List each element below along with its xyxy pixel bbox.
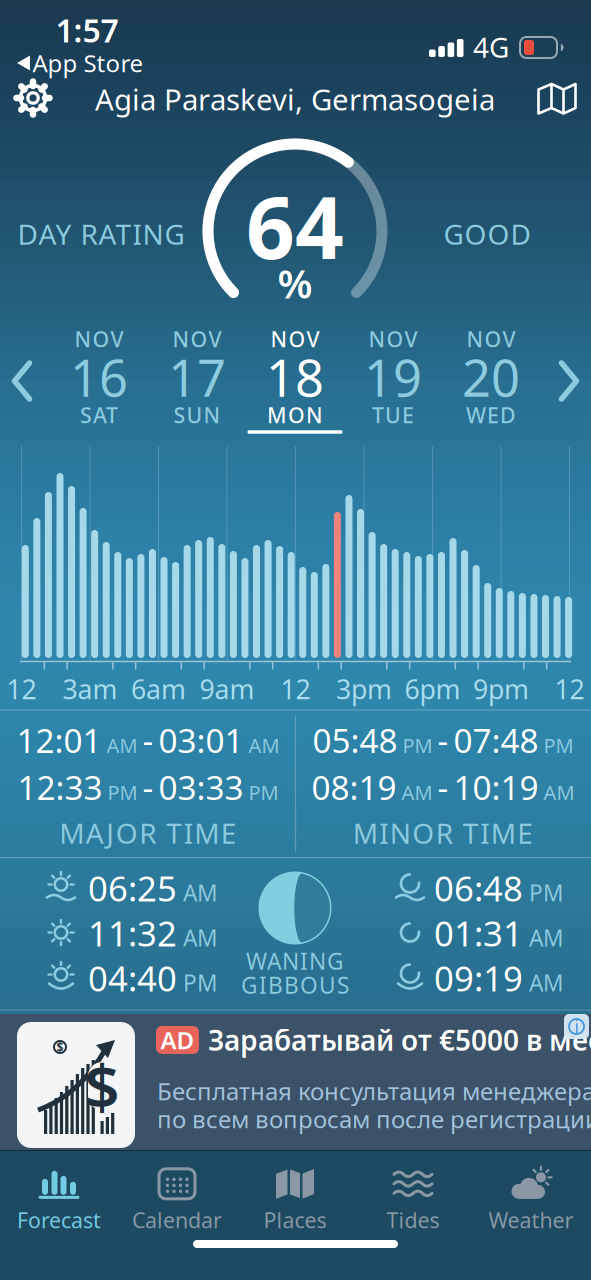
button[interactable]: Weather [472, 1166, 590, 1234]
staticText: 19 [364, 343, 422, 411]
staticText: $ [84, 1045, 119, 1127]
button[interactable]: Calendar [118, 1166, 236, 1234]
staticText: - [437, 718, 448, 762]
button[interactable]: Previous day [9, 359, 34, 403]
staticText: MAJOR TIME [59, 814, 237, 852]
staticText: PM [529, 878, 564, 908]
staticText: SUN [173, 401, 220, 429]
staticText: AM [106, 732, 137, 758]
staticText: 12:01 [16, 718, 101, 762]
staticText: Бесплатная консультация менеджера [157, 1075, 591, 1107]
staticText: AM [543, 779, 574, 805]
staticText: AM [183, 923, 218, 953]
staticText: 08:19 [311, 765, 396, 809]
staticText: 16 [70, 343, 128, 411]
staticText: NOV [74, 325, 123, 353]
staticText: по всем вопросам после регистрации. [157, 1103, 591, 1135]
staticText: i [574, 1015, 578, 1038]
button[interactable]: NOV [247, 320, 342, 432]
staticText: GOOD [443, 215, 530, 253]
button[interactable]: NOV [443, 320, 538, 432]
staticText: 1:57 [55, 9, 118, 51]
staticText: AM [529, 968, 564, 998]
staticText: Зарабатывай от €5000 в месяц [208, 1021, 591, 1059]
staticText: App Store [32, 47, 143, 79]
staticText: NOV [368, 325, 417, 353]
staticText: - [437, 765, 448, 809]
staticText: PM [183, 968, 218, 998]
staticText: Agia Paraskevi, Germasogeia [95, 79, 495, 118]
button[interactable]: Forecast [0, 1166, 118, 1234]
staticText: Places [263, 1206, 326, 1234]
staticText: AM [183, 878, 218, 908]
staticText: PM [107, 779, 137, 805]
staticText: TUE [372, 401, 414, 429]
staticText: 4G [473, 28, 509, 66]
staticText: MON [267, 401, 323, 429]
staticText: 9pm [473, 671, 529, 707]
button[interactable]: Next day [556, 359, 581, 403]
button[interactable]: Advertisement [0, 1014, 591, 1157]
staticText: PM [402, 732, 432, 758]
staticText: 04:40 [88, 955, 177, 1001]
button[interactable]: Settings [11, 76, 55, 120]
staticText: 20 [462, 343, 520, 411]
button[interactable]: Map [536, 81, 577, 116]
staticText: 01:31 [434, 910, 523, 956]
staticText: 12 [554, 671, 584, 707]
staticText: $ [56, 1039, 63, 1055]
staticText: PM [248, 779, 278, 805]
staticText: 64 [246, 169, 344, 283]
staticText: Calendar [132, 1206, 222, 1234]
staticText: Forecast [17, 1206, 101, 1234]
staticText: AM [248, 732, 279, 758]
staticText: 11:32 [88, 910, 177, 956]
staticText: 06:25 [88, 865, 177, 911]
staticText: 6am [131, 671, 186, 707]
staticText: 3am [62, 671, 117, 707]
staticText: 6pm [404, 671, 460, 707]
staticText: AD [160, 1024, 194, 1056]
staticText: 03:01 [158, 718, 243, 762]
staticText: - [142, 718, 153, 762]
staticText: 05:48 [312, 718, 397, 762]
button[interactable]: NOV [345, 320, 440, 432]
staticText: 12 [6, 671, 36, 707]
button[interactable]: Tides [354, 1166, 472, 1234]
staticText: GIBBOUS [241, 970, 349, 1000]
staticText: 07:48 [453, 718, 538, 762]
staticText: 06:48 [434, 865, 523, 911]
staticText: 9am [199, 671, 254, 707]
staticText: 12:33 [17, 765, 102, 809]
button[interactable]: NOV [149, 320, 244, 432]
staticText: Weather [488, 1206, 573, 1234]
staticText: 17 [168, 343, 226, 411]
staticText: 18 [266, 343, 324, 411]
staticText: NOV [270, 325, 319, 353]
staticText: 10:19 [453, 765, 538, 809]
staticText: 3pm [336, 671, 392, 707]
staticText: Tides [386, 1206, 439, 1234]
staticText: AM [529, 923, 564, 953]
staticText: SAT [80, 401, 118, 429]
staticText: 09:19 [434, 955, 523, 1001]
staticText: NOV [466, 325, 515, 353]
staticText: 03:33 [158, 765, 243, 809]
staticText: AM [401, 779, 432, 805]
staticText: MINOR TIME [353, 814, 533, 852]
button[interactable]: Places [236, 1166, 354, 1234]
staticText: WED [466, 401, 516, 429]
button[interactable]: Ad information [564, 1014, 589, 1039]
staticText: PM [543, 732, 573, 758]
staticText: WANING [246, 946, 344, 976]
staticText: 12 [280, 671, 310, 707]
staticText: % [277, 256, 312, 309]
staticText: DAY RATING [17, 215, 184, 253]
button[interactable]: NOV [51, 320, 146, 432]
staticText: NOV [172, 325, 221, 353]
staticText: - [142, 765, 153, 809]
